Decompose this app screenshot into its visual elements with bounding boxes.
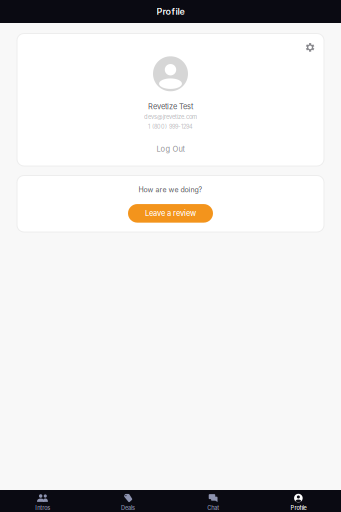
staticText: Profile [156, 6, 184, 17]
staticText: Chat [207, 504, 219, 511]
button[interactable]: Settings [299, 33, 324, 59]
button[interactable]: Log Out [140, 139, 200, 158]
button[interactable]: Intros [0, 490, 85, 512]
button[interactable]: Profile [256, 490, 341, 512]
staticText: Intros [35, 504, 50, 511]
staticText: How are we doing? [138, 185, 202, 194]
staticText: 1 (800) 999-1294 [148, 123, 193, 130]
button[interactable]: Chat [170, 490, 256, 512]
staticText: Profile [290, 504, 306, 511]
staticText: devs@jrevetize.com [144, 113, 197, 120]
button[interactable]: Deals [85, 490, 170, 512]
staticText: Revetize Test [148, 102, 193, 111]
staticText: Leave a review [145, 209, 196, 218]
staticText: Log Out [156, 144, 184, 153]
staticText: Deals [121, 504, 135, 511]
button[interactable]: Leave a review [128, 204, 213, 223]
